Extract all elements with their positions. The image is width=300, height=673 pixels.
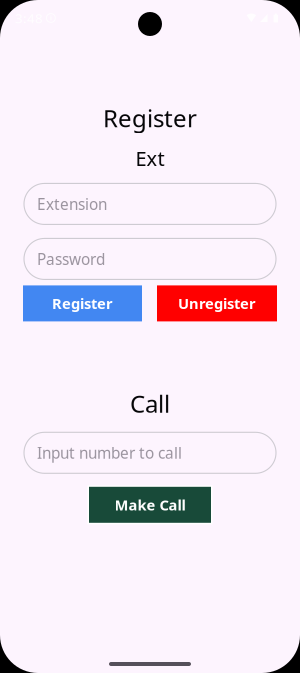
button[interactable]: Extension [24, 183, 276, 224]
button[interactable]: Unregister [157, 285, 277, 321]
staticText: Password [37, 248, 105, 269]
staticText: Register [103, 102, 197, 134]
staticText: Input number to call [37, 442, 182, 463]
button[interactable]: Make Call [87, 485, 212, 524]
staticText: Make Call [114, 495, 185, 515]
button[interactable]: Register [23, 285, 142, 321]
button[interactable]: Password [24, 238, 276, 279]
staticText: Ext [135, 145, 164, 171]
staticText: Call [130, 387, 170, 419]
staticText: Extension [37, 193, 107, 214]
staticText: Register [52, 294, 113, 313]
staticText: Unregister [178, 294, 256, 313]
button[interactable]: Input number to call [24, 432, 276, 473]
